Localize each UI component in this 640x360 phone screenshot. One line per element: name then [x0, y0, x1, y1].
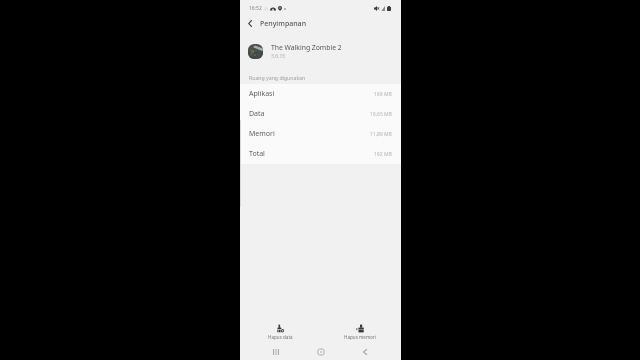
staticText: Hapus memori [344, 334, 377, 340]
button[interactable]: Navigate up [240, 16, 259, 31]
staticText: The Walking Zombie 2 [271, 43, 342, 52]
button[interactable]: Hapus memori [320, 316, 401, 344]
button[interactable]: Hapus data [240, 316, 320, 344]
button[interactable]: Back [357, 344, 373, 360]
button[interactable]: Aplikasi [240, 84, 401, 104]
staticText: Total [249, 149, 265, 159]
button[interactable]: Data [240, 104, 401, 124]
staticText: Memori [249, 129, 275, 139]
staticText: Ruang yang digunakan [249, 74, 306, 81]
staticText: 3.6.15 [271, 53, 286, 60]
staticText: Aplikasi [249, 89, 275, 99]
staticText: Hapus data [268, 334, 293, 340]
staticText: 16:52 [249, 5, 262, 12]
staticText: Data [249, 109, 265, 119]
button[interactable]: Total [240, 144, 401, 164]
staticText: 169 MB [374, 91, 392, 98]
button[interactable]: Memori [240, 124, 401, 144]
staticText: 10,65 MB [370, 111, 392, 118]
button[interactable]: Home [313, 344, 329, 360]
staticText: Penyimpanan [260, 19, 307, 29]
staticText: 11,89 MB [370, 131, 392, 138]
staticText: 192 MB [374, 151, 392, 158]
button[interactable]: Recent apps [268, 344, 284, 360]
